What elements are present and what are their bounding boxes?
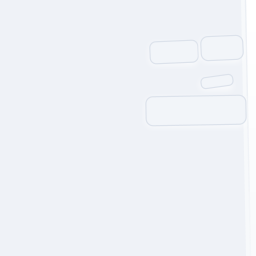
button[interactable]: Message bubble [201, 36, 243, 60]
button[interactable]: Message bubble [150, 41, 198, 63]
button[interactable]: Message bubble [201, 76, 233, 87]
button[interactable]: Message bubble [146, 96, 246, 125]
